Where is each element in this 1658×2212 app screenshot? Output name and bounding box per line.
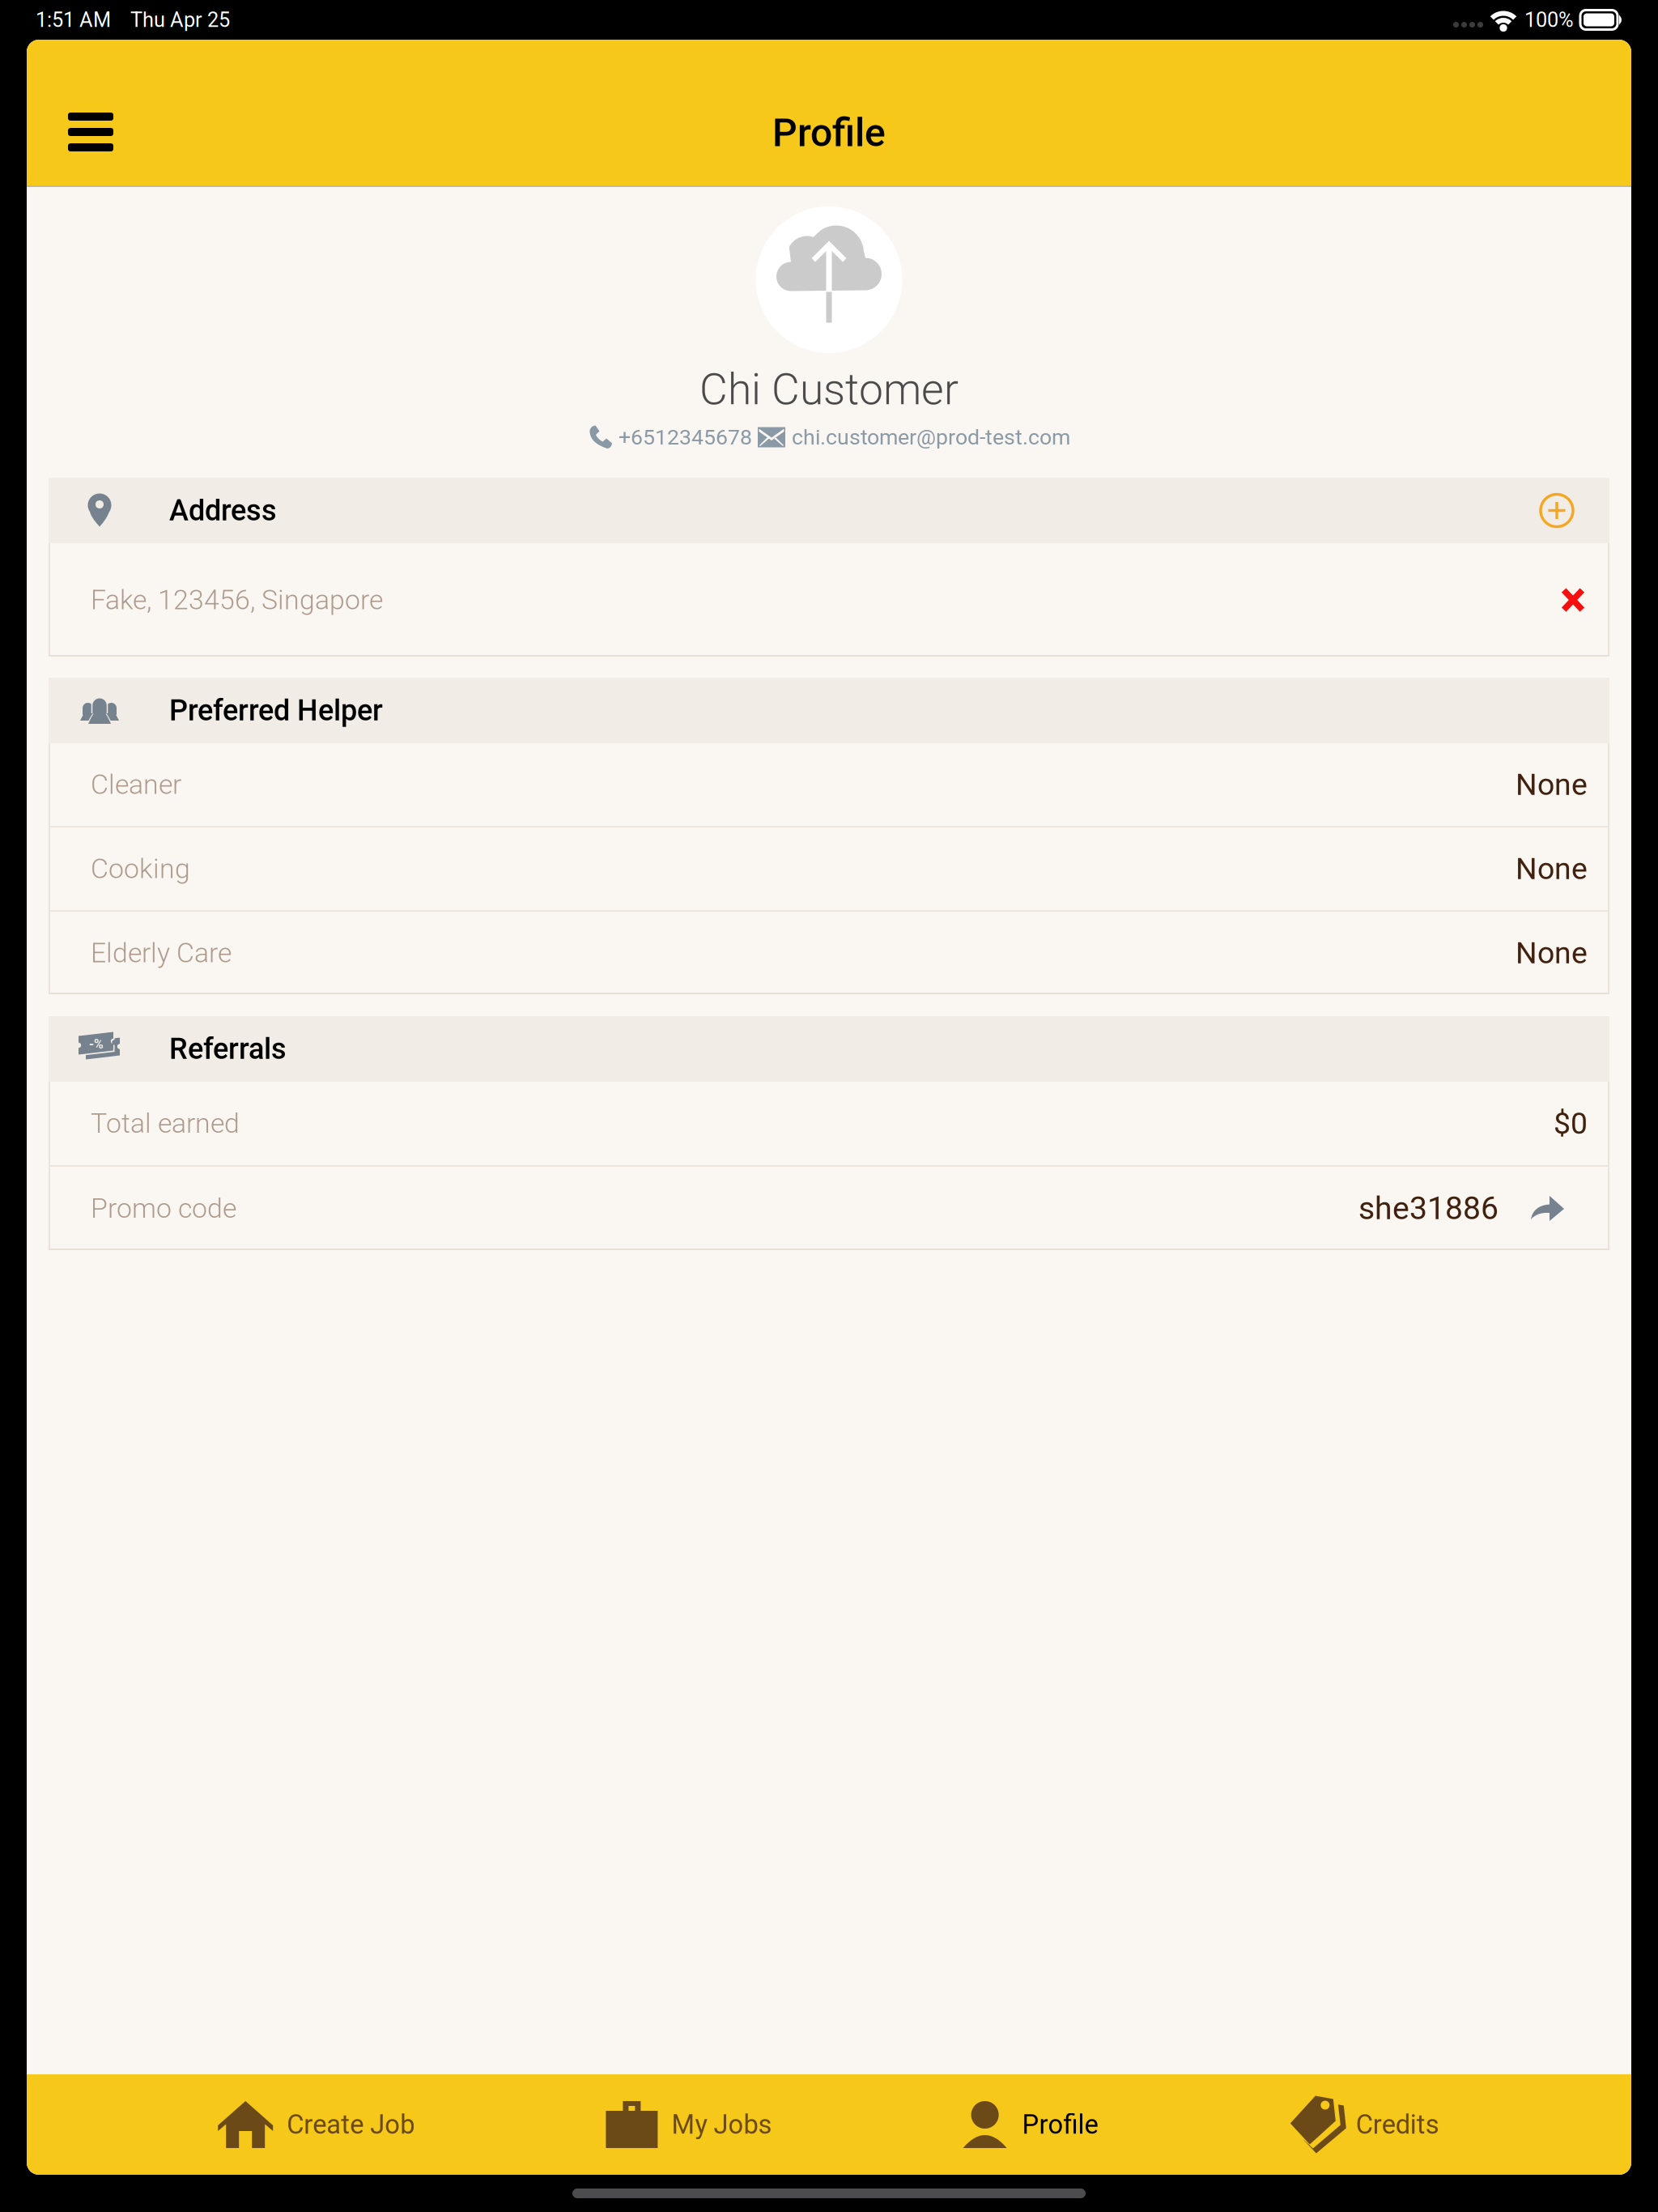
staticText: Elderly Care (91, 937, 232, 969)
button[interactable]: Elderly Care (49, 912, 1609, 994)
button[interactable]: Profile (964, 2074, 1098, 2175)
staticText: 1:51 AM (36, 8, 111, 32)
staticText: Cooking (91, 853, 190, 885)
staticText: Fake, 123456, Singapore (91, 584, 383, 616)
staticText: chi.customer@prod-test.com (792, 425, 1070, 450)
button[interactable]: Credits (1290, 2074, 1439, 2175)
staticText: Credits (1356, 2109, 1439, 2140)
staticText: Total earned (91, 1107, 240, 1139)
button[interactable]: Promo code (49, 1167, 1609, 1250)
staticText: +6512345678 (619, 425, 752, 450)
staticText: None (1516, 767, 1588, 802)
staticText: None (1516, 935, 1588, 971)
staticText: Cleaner (91, 769, 181, 801)
button[interactable]: Add address (1534, 488, 1579, 533)
staticText: she31886 (1358, 1190, 1499, 1227)
button[interactable]: Create Job (219, 2074, 415, 2175)
staticText: -% (89, 1036, 104, 1052)
button[interactable]: My Jobs (607, 2074, 772, 2175)
staticText: Thu Apr 25 (130, 8, 230, 32)
staticText: Profile (1022, 2109, 1098, 2140)
staticText: Address (169, 493, 277, 528)
staticText: $0 (1554, 1106, 1588, 1141)
staticText: Chi Customer (699, 364, 959, 415)
staticText: Profile (772, 110, 886, 156)
staticText: 100% (1524, 8, 1574, 32)
button[interactable]: Total earned (49, 1082, 1609, 1165)
staticText: Preferred Helper (169, 693, 383, 728)
button[interactable]: Fake, 123456, Singapore (49, 543, 1609, 657)
button[interactable]: Cleaner (49, 743, 1609, 826)
staticText: Create Job (287, 2109, 415, 2140)
staticText: Promo code (91, 1192, 236, 1224)
staticText: None (1516, 851, 1588, 886)
button[interactable]: Cooking (49, 827, 1609, 910)
staticText: My Jobs (671, 2109, 772, 2140)
staticText: Referrals (169, 1032, 287, 1066)
button[interactable]: Menu (50, 91, 131, 172)
